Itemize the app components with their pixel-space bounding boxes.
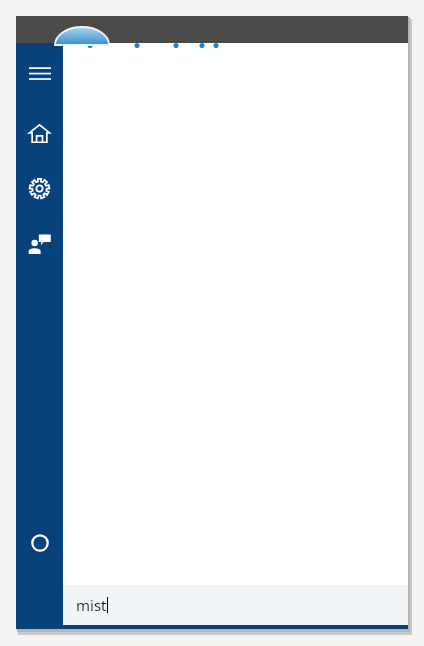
button[interactable]: Menu	[16, 57, 63, 90]
button[interactable]: Account	[16, 526, 63, 559]
button[interactable]: Home	[16, 117, 63, 150]
button[interactable]: Settings	[16, 172, 63, 205]
button[interactable]: Contacts	[16, 227, 63, 260]
staticText: mist	[76, 595, 107, 615]
button[interactable]: mist	[63, 585, 408, 625]
